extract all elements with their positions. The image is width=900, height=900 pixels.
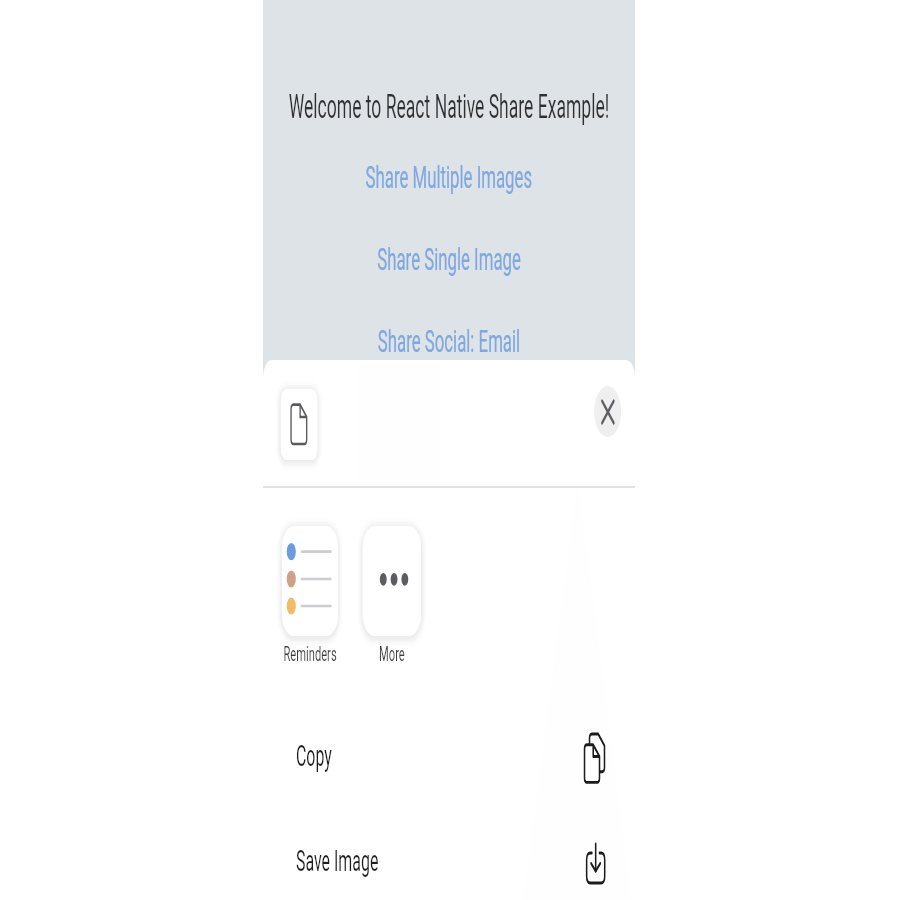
button[interactable]: More [356,515,427,647]
button[interactable]: Document [275,378,324,471]
staticText: Copy [296,738,332,773]
button[interactable]: Copy [263,705,635,805]
staticText: Welcome to React Native Share Example! [288,87,609,126]
button[interactable]: Share Multiple Images [366,159,532,196]
button[interactable]: Close [594,386,621,437]
button[interactable]: Share Social: Email [378,323,520,360]
staticText: More [362,642,421,667]
staticText: Reminders [282,642,338,667]
button[interactable]: Reminders [276,515,344,647]
button[interactable]: Share Single Image [377,241,521,278]
staticText: Save Image [296,843,379,878]
button[interactable]: Save Image [263,810,635,900]
